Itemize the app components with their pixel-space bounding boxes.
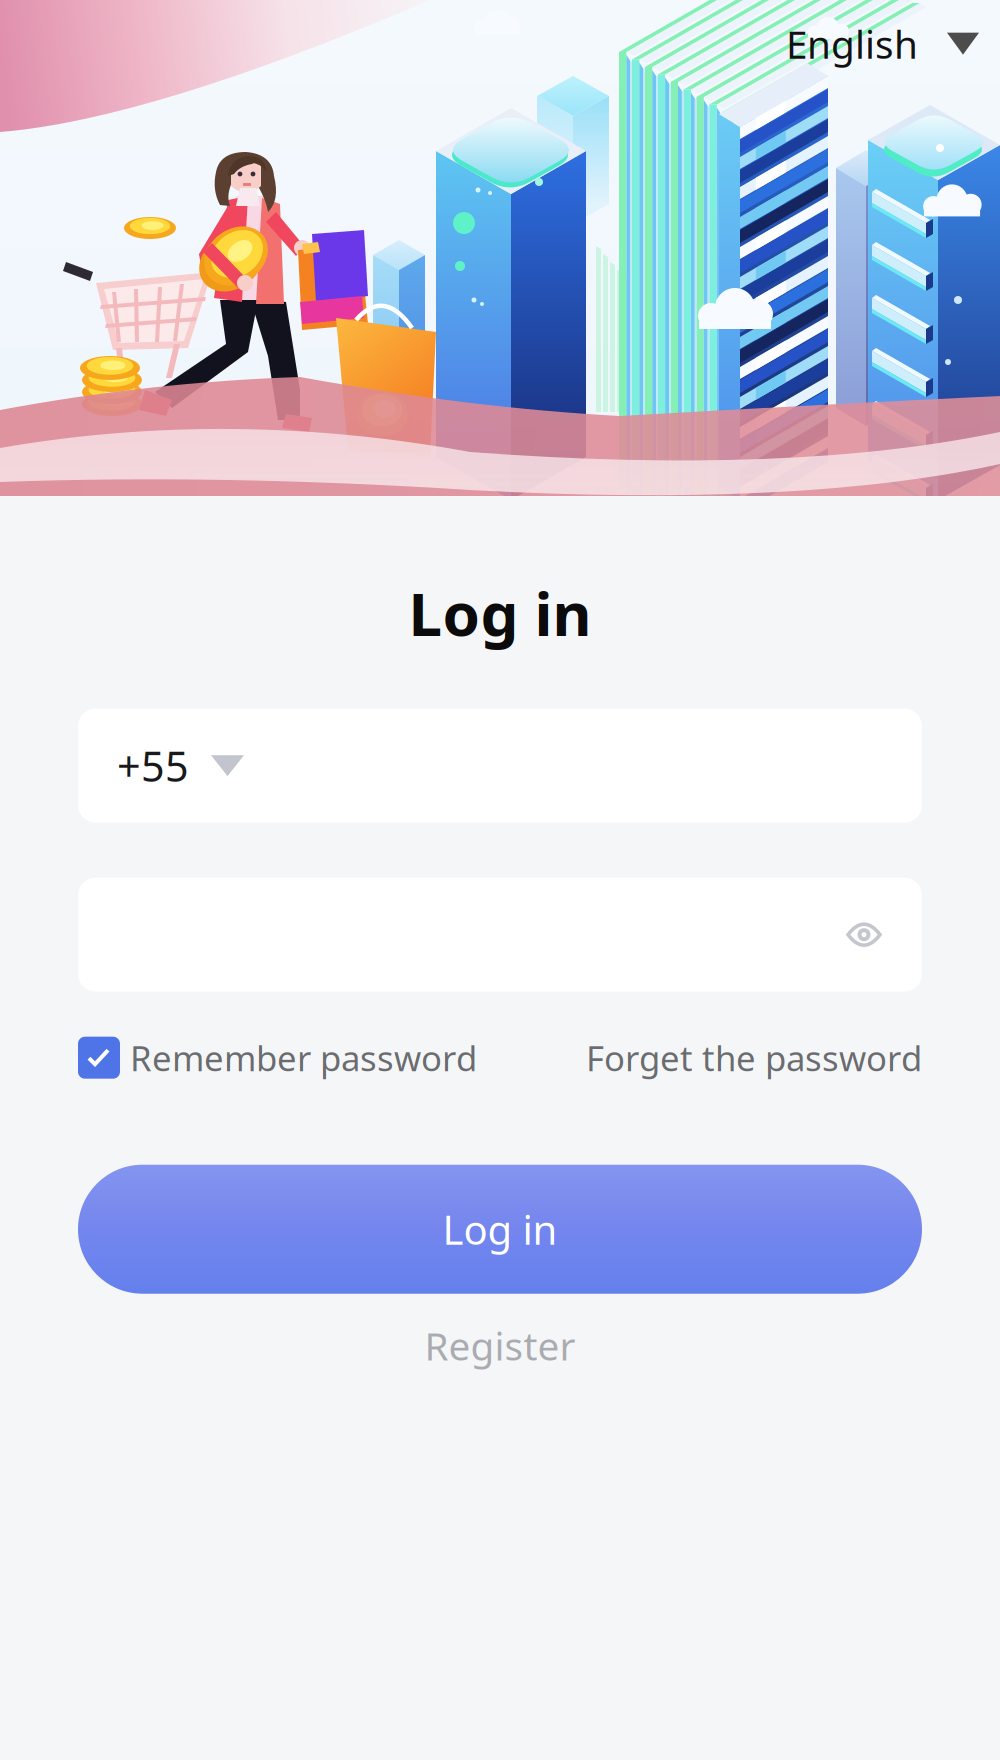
staticText: English [786,18,918,69]
staticText: Log in [442,1203,557,1256]
button[interactable]: English [786,0,1000,69]
button[interactable]: Forget the password [586,1035,922,1081]
button[interactable]: Log in [78,1165,922,1294]
staticText: Log in [408,573,591,653]
staticText: Register [424,1320,575,1371]
button[interactable]: Show password [846,922,882,948]
staticText: Forget the password [586,1035,922,1081]
button[interactable]: Remember password [78,1035,477,1081]
button[interactable]: Register [424,1294,575,1371]
staticText: +55 [117,738,189,793]
staticText: Remember password [130,1035,477,1081]
